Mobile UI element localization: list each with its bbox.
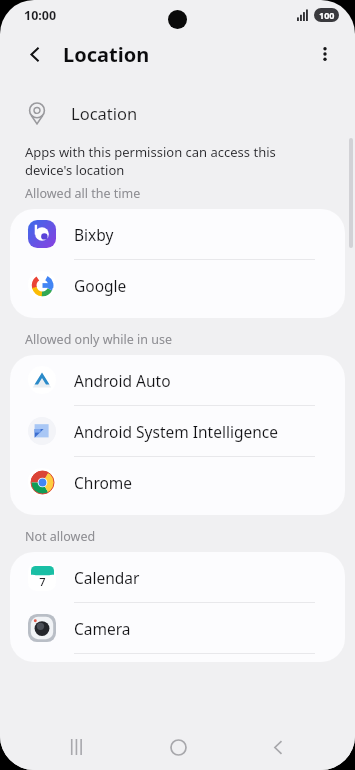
staticText: 100: [319, 9, 335, 21]
button[interactable]: Chrome: [10, 457, 345, 507]
button[interactable]: Camera: [10, 603, 345, 653]
staticText: Google: [74, 275, 127, 296]
button[interactable]: Android Auto: [10, 355, 345, 405]
staticText: Not allowed: [25, 528, 96, 545]
button[interactable]: Back: [16, 35, 54, 73]
button[interactable]: Google: [10, 260, 345, 310]
button[interactable]: Bixby: [10, 209, 345, 259]
staticText: 7: [39, 574, 46, 589]
staticText: Android Auto: [74, 370, 171, 391]
staticText: Allowed only while in use: [25, 331, 172, 348]
button[interactable]: Back: [255, 724, 301, 770]
button[interactable]: More options: [306, 35, 344, 73]
button[interactable]: Recent apps: [54, 724, 100, 770]
staticText: Chrome: [74, 472, 133, 493]
button[interactable]: 7: [10, 552, 345, 602]
staticText: Android System Intelligence: [74, 421, 278, 442]
staticText: Calendar: [74, 567, 140, 588]
button[interactable]: Home: [155, 724, 201, 770]
button[interactable]: Android System Intelligence: [10, 406, 345, 456]
staticText: Camera: [74, 618, 131, 639]
staticText: Bixby: [74, 224, 114, 245]
staticText: Allowed all the time: [25, 185, 141, 202]
staticText: Location: [63, 41, 150, 68]
staticText: 10:00: [24, 7, 57, 24]
staticText: Location: [71, 102, 138, 124]
staticText: Apps with this permission can access thi…: [25, 143, 276, 179]
